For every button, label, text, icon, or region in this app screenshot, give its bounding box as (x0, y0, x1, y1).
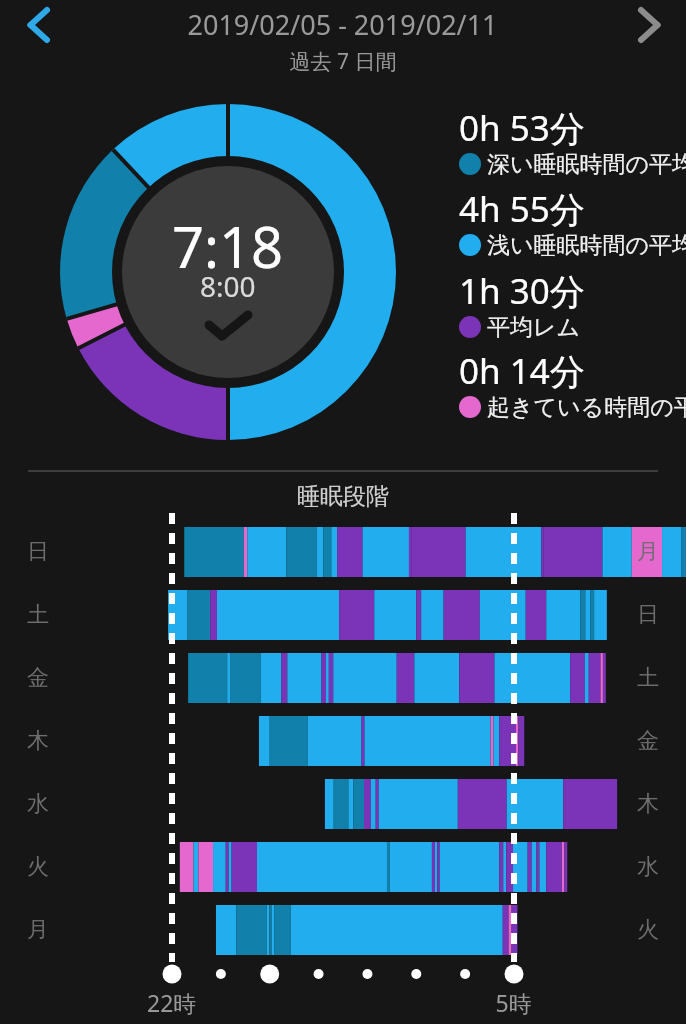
button[interactable]: Next week (622, 2, 678, 50)
button[interactable]: Previous week (8, 2, 64, 50)
